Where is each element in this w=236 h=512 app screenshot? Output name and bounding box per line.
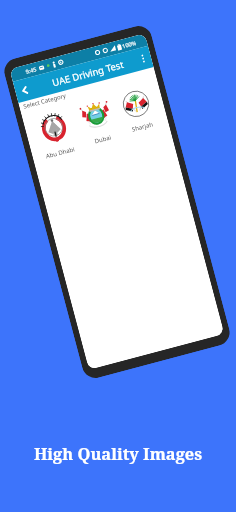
staticText: UAE Driving Test: [51, 58, 126, 89]
button[interactable]: Sharjah: [119, 86, 156, 134]
button[interactable]: Back: [13, 79, 35, 101]
button[interactable]: Abu Dhabi: [35, 107, 76, 160]
staticText: Dubai: [94, 133, 112, 146]
staticText: 100%: [121, 39, 138, 49]
staticText: Select Category: [22, 92, 67, 111]
staticText: 9:45: [25, 65, 37, 75]
staticText: High Quality Images: [0, 442, 236, 464]
button[interactable]: More options: [133, 49, 153, 68]
staticText: Abu Dhabi: [45, 145, 76, 160]
staticText: Sharjah: [131, 120, 154, 134]
button[interactable]: Dubai: [77, 96, 118, 147]
